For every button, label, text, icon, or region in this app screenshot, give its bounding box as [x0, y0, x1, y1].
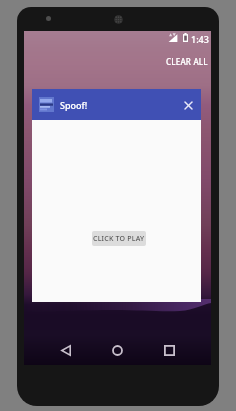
button[interactable]: Recents: [154, 335, 184, 365]
button[interactable]: Back: [51, 335, 81, 365]
staticText: CLEAR ALL: [166, 56, 208, 67]
button[interactable]: CLEAR ALL: [160, 52, 214, 71]
button[interactable]: Home: [102, 335, 132, 365]
button[interactable]: Spoof!: [32, 89, 201, 120]
staticText: CLICK TO PLAY: [93, 234, 145, 244]
staticText: 1:43: [191, 33, 209, 45]
staticText: Spoof!: [60, 99, 88, 111]
button[interactable]: CLICK TO PLAY: [92, 231, 146, 246]
button[interactable]: Close: [178, 95, 198, 115]
